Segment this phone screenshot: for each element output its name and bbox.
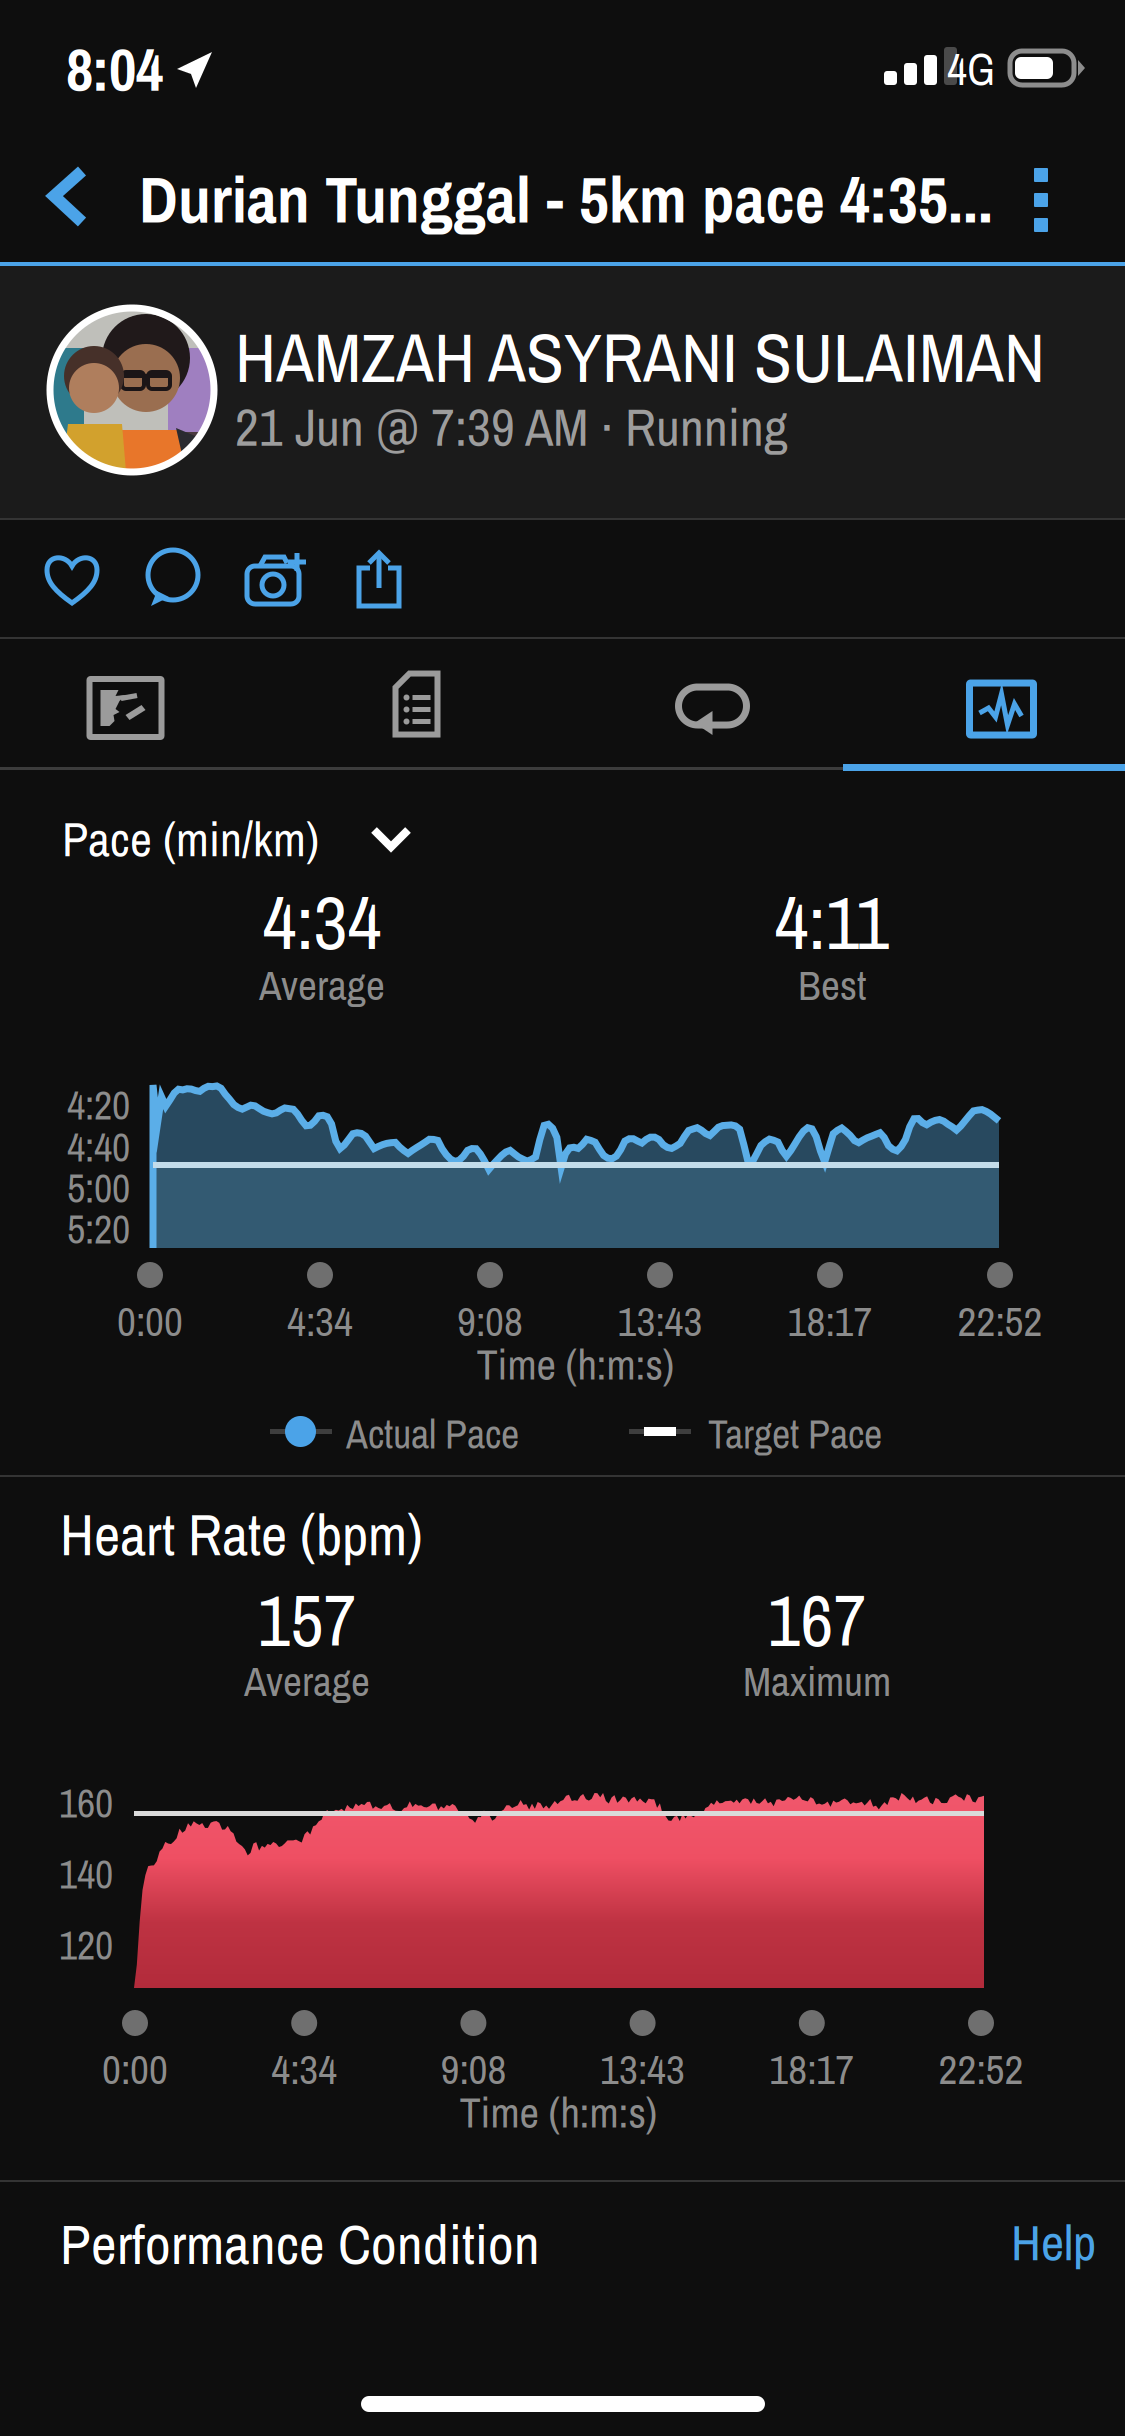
- staticText: 22:52: [938, 2041, 1023, 2097]
- button[interactable]: Map: [0, 639, 281, 767]
- staticText: 4:34: [287, 1293, 353, 1349]
- button[interactable]: Like: [24, 524, 120, 634]
- staticText: Average: [259, 957, 385, 1013]
- staticText: Target Pace: [708, 1407, 882, 1461]
- staticText: 167: [767, 1571, 866, 1668]
- staticText: 4:11: [774, 872, 889, 972]
- staticText: 13:43: [617, 1293, 702, 1349]
- staticText: 0:00: [117, 1293, 183, 1349]
- staticText: Time (h:m:s): [476, 1335, 674, 1393]
- staticText: 140: [59, 1847, 113, 1901]
- button[interactable]: Laps: [562, 639, 843, 767]
- staticText: Help: [1011, 2208, 1096, 2276]
- staticText: Actual Pace: [346, 1407, 519, 1461]
- button[interactable]: Pace (min/km): [0, 793, 470, 889]
- staticText: 18:17: [769, 2041, 854, 2097]
- staticText: 4G: [947, 39, 995, 99]
- button[interactable]: More options: [985, 132, 1095, 263]
- staticText: 0:00: [102, 2041, 168, 2097]
- staticText: 21 Jun @ 7:39 AM · Running: [235, 392, 788, 462]
- staticText: 120: [59, 1918, 113, 1972]
- staticText: 8:04: [66, 29, 163, 109]
- staticText: 5:00: [67, 1161, 130, 1215]
- staticText: Maximum: [743, 1653, 891, 1709]
- staticText: Best: [798, 957, 866, 1013]
- button[interactable]: Share: [331, 524, 427, 634]
- button[interactable]: Help: [995, 2200, 1125, 2286]
- staticText: Average: [244, 1653, 370, 1709]
- staticText: Heart Rate (bpm): [60, 1496, 423, 1573]
- button[interactable]: Details: [281, 639, 562, 767]
- staticText: Durian Tunggal - 5km pace 4:35...: [139, 155, 993, 243]
- staticText: Performance Condition: [60, 2206, 540, 2281]
- staticText: 9:08: [440, 2041, 506, 2097]
- staticText: 157: [257, 1571, 356, 1668]
- staticText: 22:52: [957, 1293, 1042, 1349]
- staticText: 4:40: [67, 1120, 130, 1174]
- staticText: 4:34: [271, 2041, 337, 2097]
- button[interactable]: Comment: [125, 524, 221, 634]
- staticText: Pace (min/km): [62, 807, 319, 871]
- button[interactable]: Add photo: [228, 524, 324, 634]
- staticText: 18:17: [787, 1293, 872, 1349]
- button[interactable]: Back: [0, 132, 120, 263]
- staticText: 160: [59, 1776, 113, 1830]
- staticText: 13:43: [600, 2041, 685, 2097]
- button[interactable]: Charts: [843, 639, 1124, 767]
- staticText: 4:34: [262, 872, 381, 972]
- staticText: 4:20: [67, 1078, 130, 1132]
- staticText: 5:20: [67, 1202, 130, 1256]
- staticText: Time (h:m:s): [459, 2083, 657, 2141]
- staticText: 9:08: [457, 1293, 523, 1349]
- staticText: HAMZAH ASYRANI SULAIMAN: [235, 310, 1045, 404]
